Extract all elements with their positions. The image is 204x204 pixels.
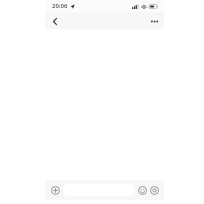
button[interactable]: Attach <box>49 184 61 196</box>
staticText: 20:06 <box>52 2 68 10</box>
button[interactable]: Camera <box>149 185 160 196</box>
button[interactable]: Emoji <box>137 185 148 196</box>
button[interactable]: More options <box>148 15 160 27</box>
button[interactable]: Back <box>49 15 61 27</box>
